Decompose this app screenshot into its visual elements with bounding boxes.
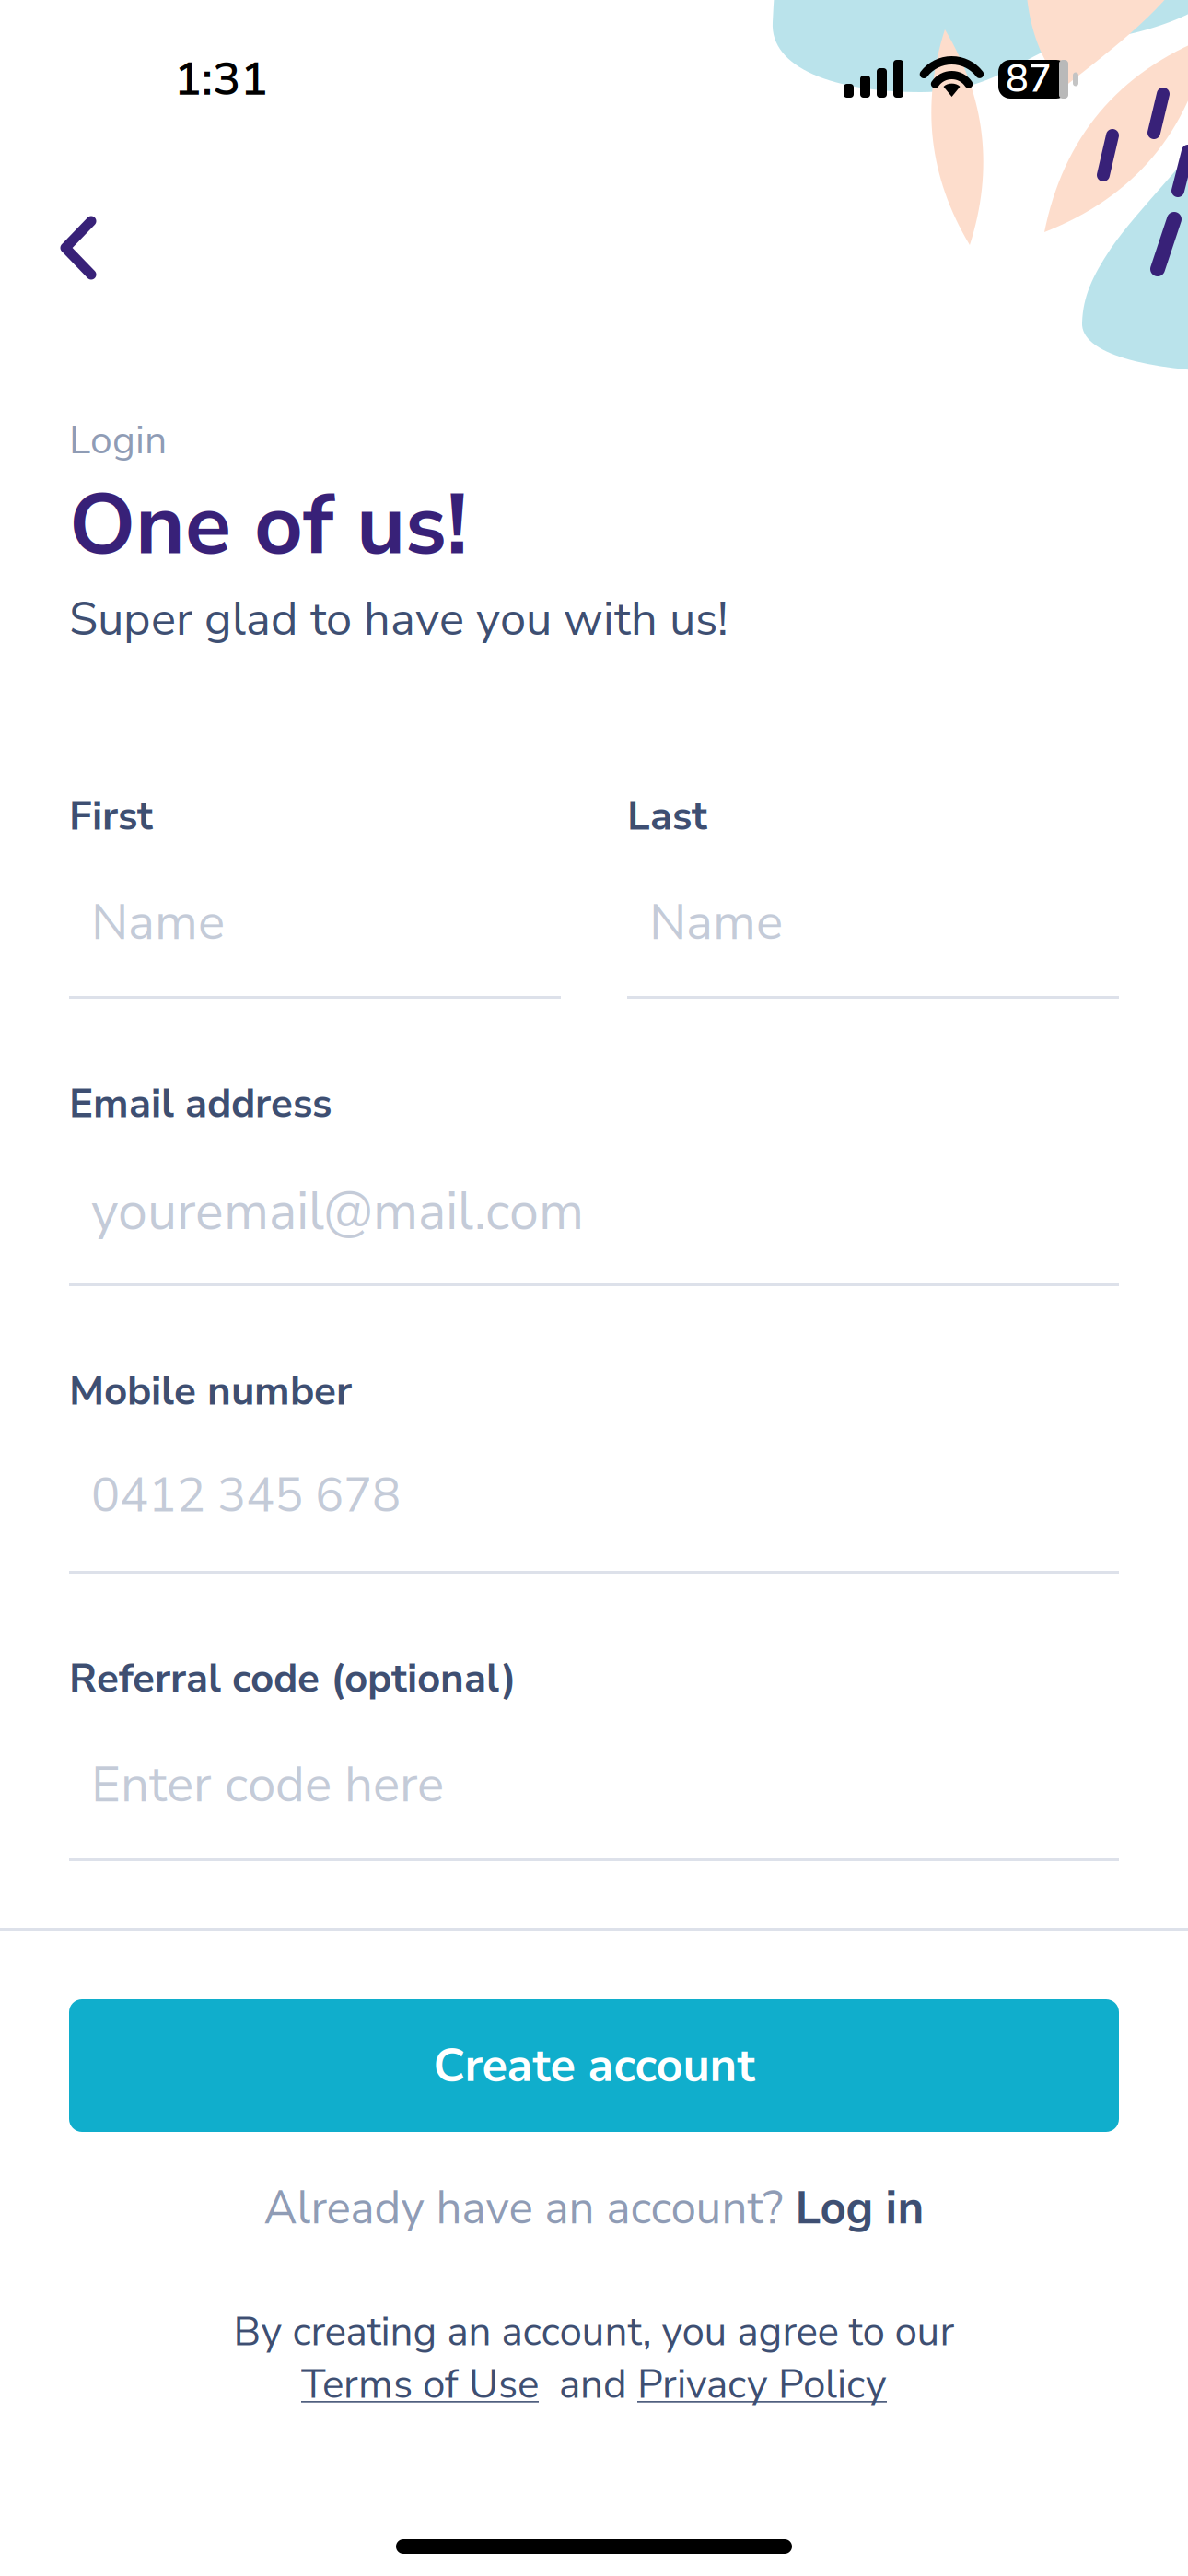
staticText: 1:31 [174, 47, 268, 111]
staticText: Referral code (optional) [69, 1651, 517, 1706]
staticText: and [539, 2357, 637, 2412]
button[interactable]: Terms of Use [301, 2357, 539, 2412]
staticText: youremail@mail.com [91, 1176, 584, 1248]
staticText: First [69, 789, 153, 844]
staticText: Terms of Use [301, 2357, 539, 2412]
button[interactable]: Privacy Policy [637, 2357, 887, 2412]
button[interactable]: Back [0, 147, 136, 301]
staticText: Name [649, 888, 783, 957]
staticText: Super glad to have you with us! [69, 588, 728, 651]
staticText: Enter code here [91, 1751, 444, 1819]
staticText: 0412 345 678 [91, 1463, 401, 1528]
button[interactable]: Already have an account? [0, 2184, 1188, 2232]
staticText: Last [627, 789, 707, 844]
staticText: One of us! [69, 468, 468, 583]
staticText: Login [69, 413, 167, 467]
staticText: Log in [795, 2177, 924, 2239]
button[interactable]: Create account [0, 1999, 1188, 2132]
staticText: Privacy Policy [637, 2357, 887, 2412]
staticText: Email address [69, 1076, 332, 1131]
staticText: 87 [1006, 53, 1052, 105]
staticText: By creating an account, you agree to our [233, 2304, 955, 2359]
staticText: Mobile number [69, 1364, 352, 1419]
staticText: Name [91, 888, 225, 957]
staticText: Already have an account? [264, 2177, 795, 2239]
staticText: Create account [433, 2034, 755, 2097]
